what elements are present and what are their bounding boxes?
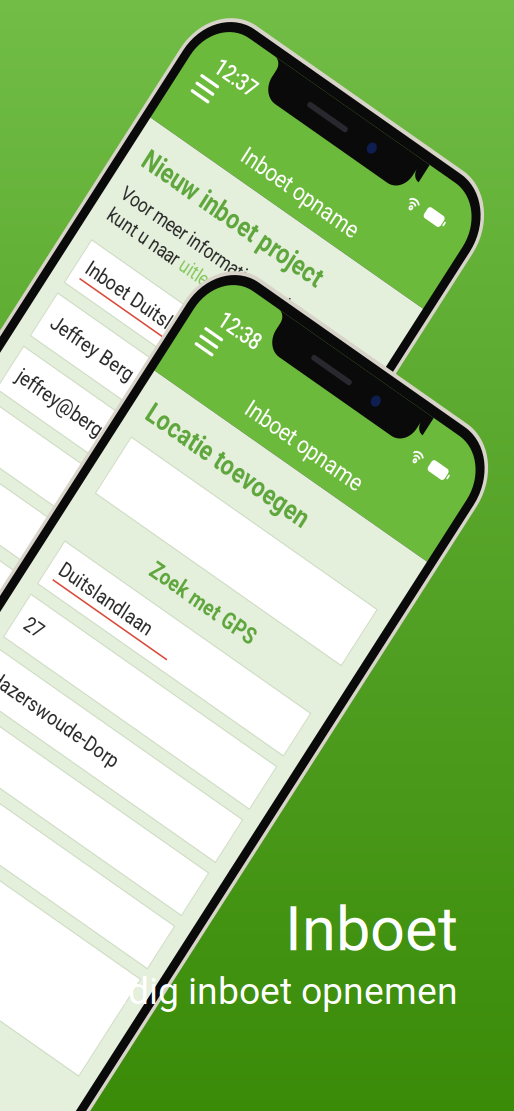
staticText: Inboet — [285, 893, 458, 965]
button[interactable]: Zoek met GPS — [29, 236, 340, 285]
staticText: Inboet opname — [113, 84, 256, 109]
staticText: Voor meer informatie over hoe — [29, 175, 262, 195]
staticText: gaan. — [163, 197, 210, 217]
staticText: kunt u naar — [29, 197, 120, 217]
staticText: Locatie toevoegen — [29, 135, 229, 164]
staticText: Nieuw inboet project — [29, 135, 252, 164]
staticText: Jeffrey Berg — [40, 301, 140, 323]
staticText: Duitslandlaan — [40, 295, 154, 317]
staticText: Inboet Duitslandlaan — [40, 245, 185, 267]
staticText: 27 — [40, 351, 60, 373]
staticText: Zoek met GPS — [120, 249, 249, 272]
staticText: Eenvoudig inboet opnemen — [6, 969, 458, 1013]
staticText: Hazerswoude-Dorp — [40, 406, 198, 428]
staticText: jeffrey@bergmultidiensten.nl — [40, 356, 278, 378]
staticText: Inboet opname — [113, 84, 256, 109]
staticText: uitleg — [120, 197, 163, 217]
